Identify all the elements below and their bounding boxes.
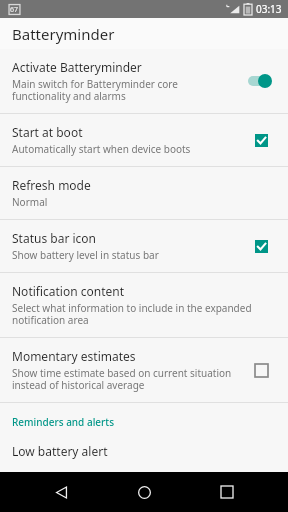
staticText: Notification content (12, 283, 125, 299)
staticText: Reminders and alerts (12, 415, 114, 429)
button[interactable]: Recent apps (205, 472, 249, 512)
staticText: 03:13 (256, 2, 282, 16)
staticText: Select what information to include in th… (12, 301, 270, 327)
button[interactable]: Notification content (0, 273, 288, 337)
staticText: Activate Batteryminder (12, 59, 142, 75)
staticText: Start at boot (12, 124, 83, 140)
button[interactable]: Home (122, 472, 166, 512)
button[interactable]: Status bar icon (0, 220, 288, 272)
staticText: Low battery alert (12, 443, 108, 459)
button[interactable]: Activate Batteryminder (0, 49, 288, 113)
staticText: Normal (12, 195, 48, 209)
button[interactable]: Refresh mode (0, 167, 288, 219)
button[interactable]: Checked (252, 131, 270, 149)
button[interactable]: Low battery alert (0, 433, 288, 472)
staticText: Show time estimate based on current situ… (12, 366, 236, 392)
button[interactable]: Checked (252, 237, 270, 255)
staticText: Automatically start when device boots (12, 142, 191, 156)
button[interactable]: Start at boot (0, 114, 288, 166)
staticText: Show battery level in status bar (12, 248, 159, 262)
staticText: 67 (10, 5, 19, 15)
button[interactable]: Momentary estimates (0, 338, 288, 402)
staticText: Main switch for Batteryminder core funct… (12, 77, 236, 103)
button[interactable]: Activate Batteryminder toggle (246, 72, 276, 90)
button[interactable]: Back (39, 472, 83, 512)
staticText: Momentary estimates (12, 348, 136, 364)
staticText: Refresh mode (12, 177, 91, 193)
button[interactable]: Unchecked (252, 361, 270, 379)
staticText: Status bar icon (12, 230, 96, 246)
staticText: Batteryminder (12, 24, 115, 44)
